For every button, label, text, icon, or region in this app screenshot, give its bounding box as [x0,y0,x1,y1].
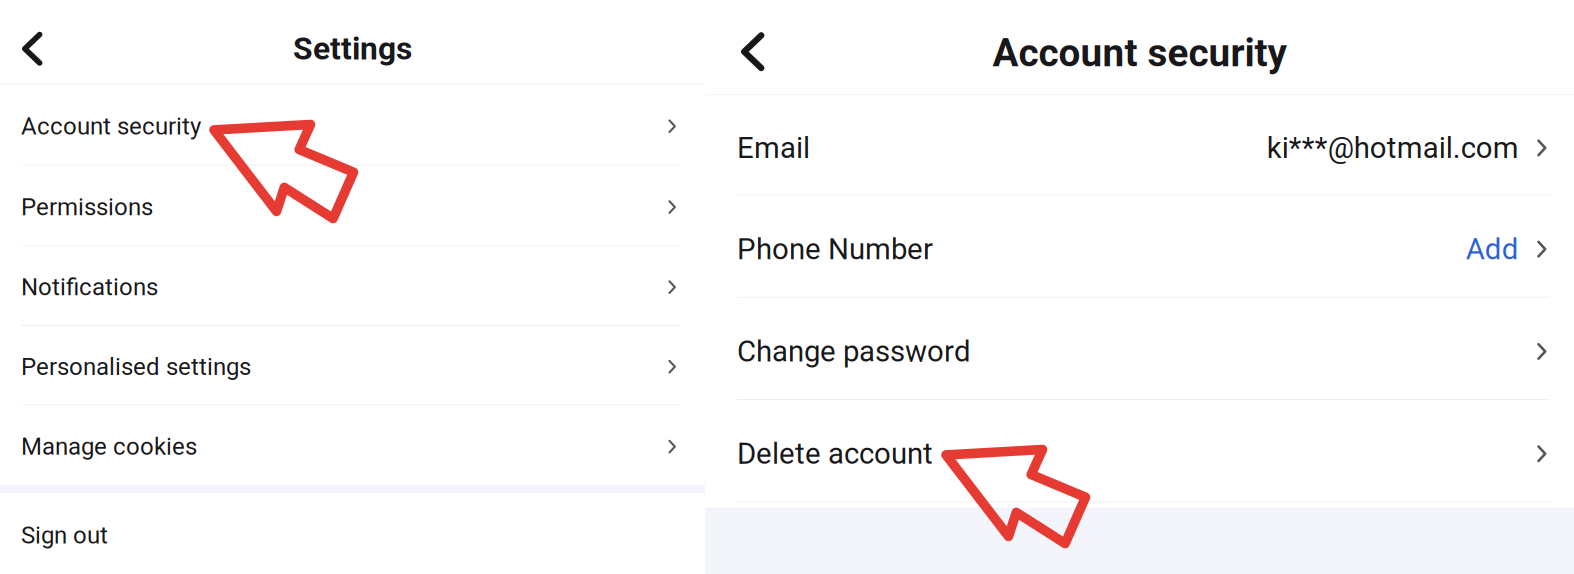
button[interactable]: Change password [705,298,1574,399]
staticText: Change password [737,334,971,369]
staticText: Manage cookies [21,432,197,461]
staticText: Email [737,131,810,165]
staticText: Personalised settings [21,353,251,381]
button[interactable]: Email [705,95,1574,194]
staticText: Phone Number [737,232,933,266]
button[interactable]: Delete account [705,400,1574,501]
button[interactable]: Account security [0,85,705,165]
button[interactable]: Personalised settings [0,326,705,404]
staticText: Account security [21,112,201,140]
staticText: Delete account [737,437,933,471]
button[interactable]: Back [705,9,784,85]
staticText: Sign out [21,521,108,549]
staticText: Add [1466,232,1519,266]
button[interactable]: Permissions [0,166,705,245]
staticText: Account security [992,30,1286,76]
staticText: Permissions [21,193,153,221]
staticText: Settings [293,30,412,67]
button[interactable]: Phone Number [705,195,1574,297]
button[interactable]: Notifications [0,246,705,325]
staticText: ki***@hotmail.com [1267,131,1519,165]
button[interactable]: Back [0,4,60,78]
button[interactable]: Manage cookies [0,405,705,485]
staticText: Notifications [21,273,158,301]
button[interactable]: Sign out [0,493,705,574]
